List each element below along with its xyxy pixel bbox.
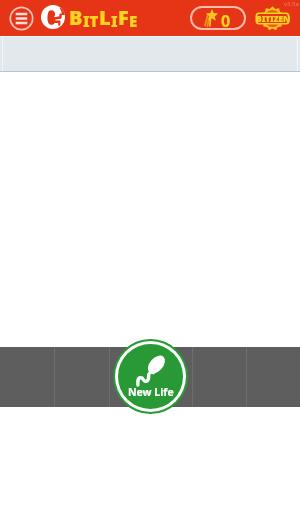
staticText: New Life <box>128 385 174 399</box>
staticText: I <box>111 11 118 31</box>
staticText: BITIZEN <box>256 13 290 25</box>
button[interactable]: Bitizen <box>255 6 290 31</box>
staticText: L <box>99 4 111 31</box>
staticText: 0 <box>221 10 231 32</box>
button[interactable]: New Life <box>110 347 192 407</box>
staticText: F <box>118 4 129 31</box>
button[interactable]: Bits: 0 <box>190 6 246 30</box>
staticText: B <box>69 4 83 31</box>
staticText: E <box>129 11 138 31</box>
staticText: IT <box>83 11 99 31</box>
staticText: v3.5a <box>284 0 299 8</box>
button[interactable]: New Life <box>118 344 183 409</box>
button[interactable]: Menu <box>8 5 35 32</box>
